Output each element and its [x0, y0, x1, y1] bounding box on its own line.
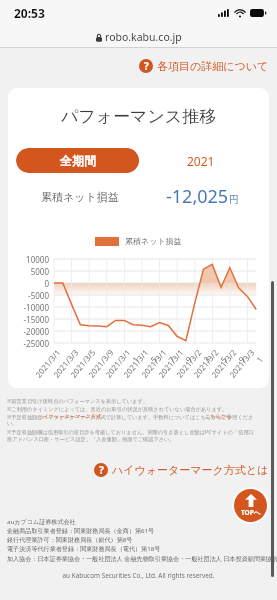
staticText: auカブコム証券株式会社 [7, 517, 76, 525]
button[interactable]: 全期間 [16, 148, 139, 173]
staticText: 2021/3/17 [138, 347, 177, 387]
staticText: ※予定収益額欄は信用取引の逆日歩を考慮しておりません。実際の引き落とし金額はPC… [7, 428, 254, 435]
staticText: ※前営業日引け後時点のパフォーマンスを表示しています。 [7, 397, 148, 404]
staticText: 2021/3/15 [120, 347, 159, 387]
staticText: 2021/3/5 [67, 347, 97, 380]
staticText: こちらから [205, 413, 232, 420]
staticText: 2021/3/3 [50, 347, 80, 380]
staticText: -5000 [8, 290, 49, 301]
staticText: ※ご利用のタイミングによっては、直近のお取引の状況が反映されていない場合がありま… [7, 405, 228, 412]
staticText: TOPへ [241, 508, 261, 517]
staticText: 10000 [8, 254, 49, 265]
staticText: パフォーマンス推移 [8, 106, 269, 127]
staticText: 電子決済等代行業者登録：関東財務局長（電代）第18号 [7, 544, 161, 552]
staticText: -12,025 [166, 184, 229, 209]
staticText: ハイウォーターマーク方式 [38, 413, 102, 420]
staticText: 累積ネット損益 [125, 236, 182, 246]
staticText: 全期間 [60, 153, 96, 168]
staticText: 銀行代理業許可：関東財務局長（銀代）第8号 [7, 535, 133, 543]
staticText: 2021/3/31 [226, 347, 265, 387]
staticText: 加入協会：日本証券業協会・一般社団法人 金融先物取引業協会・一般社団法人 日本投… [7, 554, 277, 562]
staticText: 2021 [187, 153, 215, 169]
staticText: 5000 [8, 266, 49, 277]
button[interactable]: ? [94, 463, 269, 477]
staticText: ※予定収益額はハイウォーターマーク方式で計算しています。手数料についてはこちらか… [7, 413, 254, 420]
staticText: robo.kabu.co.jp [105, 30, 182, 44]
staticText: -10000 [8, 302, 49, 313]
staticText: 20:53 [14, 5, 45, 21]
staticText: 2021/3/11 [102, 347, 141, 387]
staticText: au Kabucom Securities Co., Ltd. All righ… [0, 571, 277, 580]
staticText: ? [144, 59, 149, 73]
button[interactable]: ? [139, 59, 269, 73]
staticText: 0 [8, 278, 49, 289]
staticText: -15000 [8, 314, 49, 325]
staticText: 2021/3/19 [155, 347, 194, 387]
staticText: -20000 [8, 326, 49, 337]
staticText: 累積ネット損益 [41, 190, 119, 204]
staticText: 2021/3/25 [190, 347, 229, 387]
staticText: ? [99, 463, 104, 477]
staticText: い。 [7, 420, 18, 427]
staticText: 2021/3/23 [173, 347, 212, 387]
staticText: 円 [229, 193, 239, 206]
staticText: 2021/3/1 [32, 347, 62, 380]
staticText: ハイウォーターマーク方式とは [112, 463, 269, 477]
staticText: 2021/3/9 [85, 347, 115, 380]
staticText: -25000 [8, 338, 49, 349]
staticText: 座アドバンス口座・サービス設定」「入金価額」画面でご確認下さい。 [7, 436, 175, 443]
staticText: 2021/3/29 [208, 347, 247, 387]
staticText: 各項目の詳細について [157, 59, 269, 73]
button[interactable]: Scroll to top [232, 487, 269, 524]
button[interactable]: 2021 [139, 148, 262, 173]
staticText: 金融商品取引業者登録：関東財務局長（金商）第61号 [7, 526, 155, 534]
